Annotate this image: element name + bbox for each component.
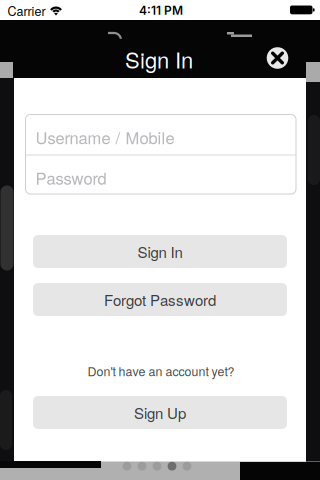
button[interactable]: Username / Mobile (35, 117, 285, 157)
staticText: Carrier (7, 2, 45, 19)
staticText: Don't have an account yet? (87, 362, 234, 380)
button[interactable]: Password (35, 158, 285, 197)
staticText: Sign Up (134, 402, 186, 423)
button[interactable]: Forgot Password (33, 283, 287, 316)
staticText: Forgot Password (104, 289, 216, 310)
staticText: Password (35, 166, 106, 189)
button[interactable] (263, 44, 292, 72)
staticText: 4:11 PM (139, 3, 183, 18)
staticText: Username / Mobile (35, 125, 174, 149)
staticText: Sign In (125, 43, 193, 75)
button[interactable]: Sign Up (33, 396, 287, 429)
button[interactable]: Sign In (33, 235, 287, 268)
staticText: Sign In (137, 241, 182, 262)
